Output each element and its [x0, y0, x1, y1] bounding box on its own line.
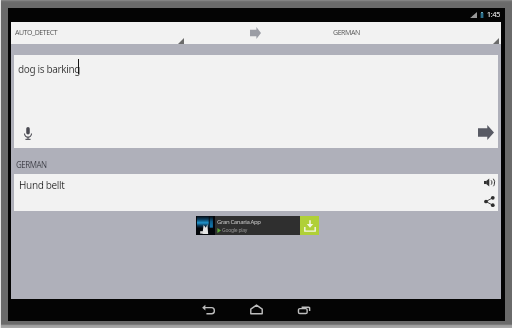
staticText: 1:45 — [487, 10, 501, 20]
button[interactable]: Recent apps — [292, 299, 316, 320]
staticText: GERMAN — [333, 28, 360, 38]
staticText: GERMAN — [16, 159, 47, 170]
button[interactable]: Swap languages — [231, 22, 279, 44]
button[interactable]: Gran Canaria App — [196, 216, 319, 235]
button[interactable]: Home — [244, 299, 268, 320]
button[interactable]: Back — [196, 299, 220, 320]
staticText: AUTO_DETECT — [15, 28, 58, 38]
staticText: Gran Canaria App — [217, 218, 261, 226]
button[interactable]: Listen — [481, 174, 498, 191]
staticText: Hund bellt — [19, 178, 65, 192]
button[interactable]: Voice input — [18, 123, 38, 143]
button[interactable]: Share — [481, 193, 498, 210]
button[interactable]: Translate — [475, 121, 497, 143]
button[interactable]: GERMAN — [311, 22, 501, 44]
button[interactable]: Install — [300, 216, 319, 235]
staticText: Google play — [222, 227, 248, 234]
button[interactable]: AUTO_DETECT — [11, 22, 186, 44]
staticText: dog is barking — [18, 62, 81, 76]
